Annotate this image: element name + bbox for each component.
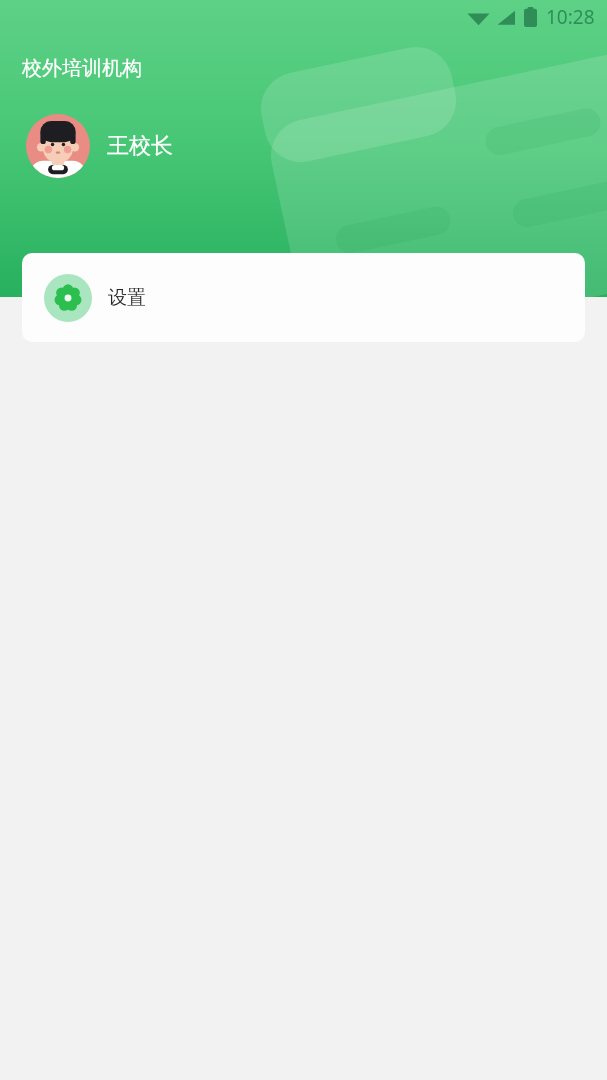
staticText: 设置 [108,286,146,310]
button[interactable]: 设置 [22,253,585,342]
button[interactable]: Profile avatar [26,114,173,178]
other: Profile avatar [26,114,90,178]
staticText: 校外培训机构 [22,56,142,81]
staticText: 10:28 [546,4,595,30]
staticText: 王校长 [107,132,173,160]
